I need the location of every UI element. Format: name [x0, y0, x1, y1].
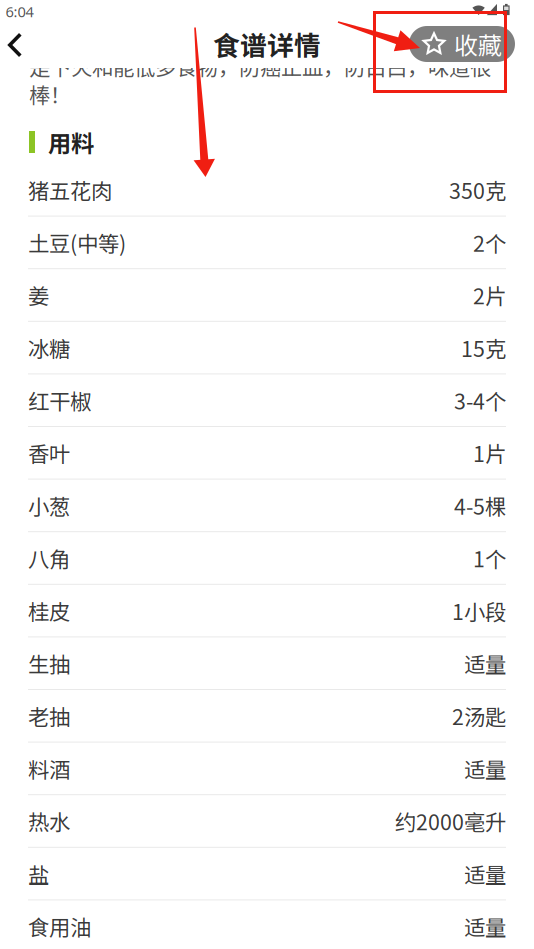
- staticText: 收藏: [454, 27, 502, 61]
- staticText: 1个: [473, 543, 506, 573]
- button[interactable]: 土豆(中等): [0, 217, 534, 269]
- staticText: 适量: [464, 753, 506, 784]
- button[interactable]: 老抽: [0, 690, 534, 743]
- button[interactable]: 冰糖: [0, 322, 534, 374]
- button[interactable]: 返回: [0, 22, 37, 68]
- button[interactable]: 香叶: [0, 427, 534, 480]
- button[interactable]: 生抽: [0, 637, 534, 690]
- button[interactable]: 姜: [0, 269, 534, 322]
- staticText: 1小段: [452, 595, 506, 626]
- staticText: 猪五花肉: [28, 174, 112, 205]
- staticText: 食用油: [28, 911, 91, 942]
- button[interactable]: 八角: [0, 532, 534, 585]
- staticText: 八角: [28, 543, 70, 573]
- staticText: 用料: [48, 125, 94, 159]
- staticText: 土豆(中等): [28, 227, 126, 258]
- staticText: 生抽: [28, 648, 70, 679]
- staticText: 约2000毫升: [395, 806, 506, 836]
- button[interactable]: 猪五花肉: [0, 164, 534, 217]
- staticText: 6:04: [5, 1, 33, 21]
- staticText: 棒！: [29, 79, 71, 109]
- staticText: 盐: [28, 858, 49, 889]
- staticText: 老抽: [28, 700, 70, 731]
- staticText: 15克: [461, 332, 506, 363]
- staticText: 是下火和能低多食物，防癌止血，防白白，味道很: [29, 51, 491, 81]
- button[interactable]: 收藏: [409, 26, 515, 62]
- staticText: 350克: [449, 174, 506, 205]
- staticText: 2个: [473, 227, 506, 258]
- button[interactable]: 小葱: [0, 480, 534, 532]
- button[interactable]: 热水: [0, 795, 534, 848]
- staticText: 1片: [473, 437, 506, 468]
- button[interactable]: 料酒: [0, 743, 534, 795]
- staticText: 料酒: [28, 753, 70, 784]
- button[interactable]: 红干椒: [0, 374, 534, 427]
- staticText: 2汤匙: [452, 700, 506, 731]
- staticText: 适量: [464, 648, 506, 679]
- staticText: 小葱: [28, 490, 70, 521]
- staticText: 红干椒: [28, 385, 91, 416]
- staticText: 适量: [464, 858, 506, 889]
- staticText: 2片: [473, 280, 506, 310]
- staticText: 香叶: [28, 437, 70, 468]
- staticText: 适量: [464, 911, 506, 942]
- button[interactable]: 盐: [0, 848, 534, 900]
- staticText: 3-4个: [454, 385, 506, 416]
- staticText: 冰糖: [28, 332, 70, 363]
- button[interactable]: 桂皮: [0, 585, 534, 637]
- staticText: 桂皮: [28, 595, 70, 626]
- button[interactable]: 食用油: [0, 900, 534, 949]
- staticText: 姜: [28, 280, 49, 310]
- staticText: 热水: [28, 806, 70, 836]
- staticText: 食谱详情: [213, 25, 321, 63]
- staticText: 4-5棵: [454, 490, 506, 521]
